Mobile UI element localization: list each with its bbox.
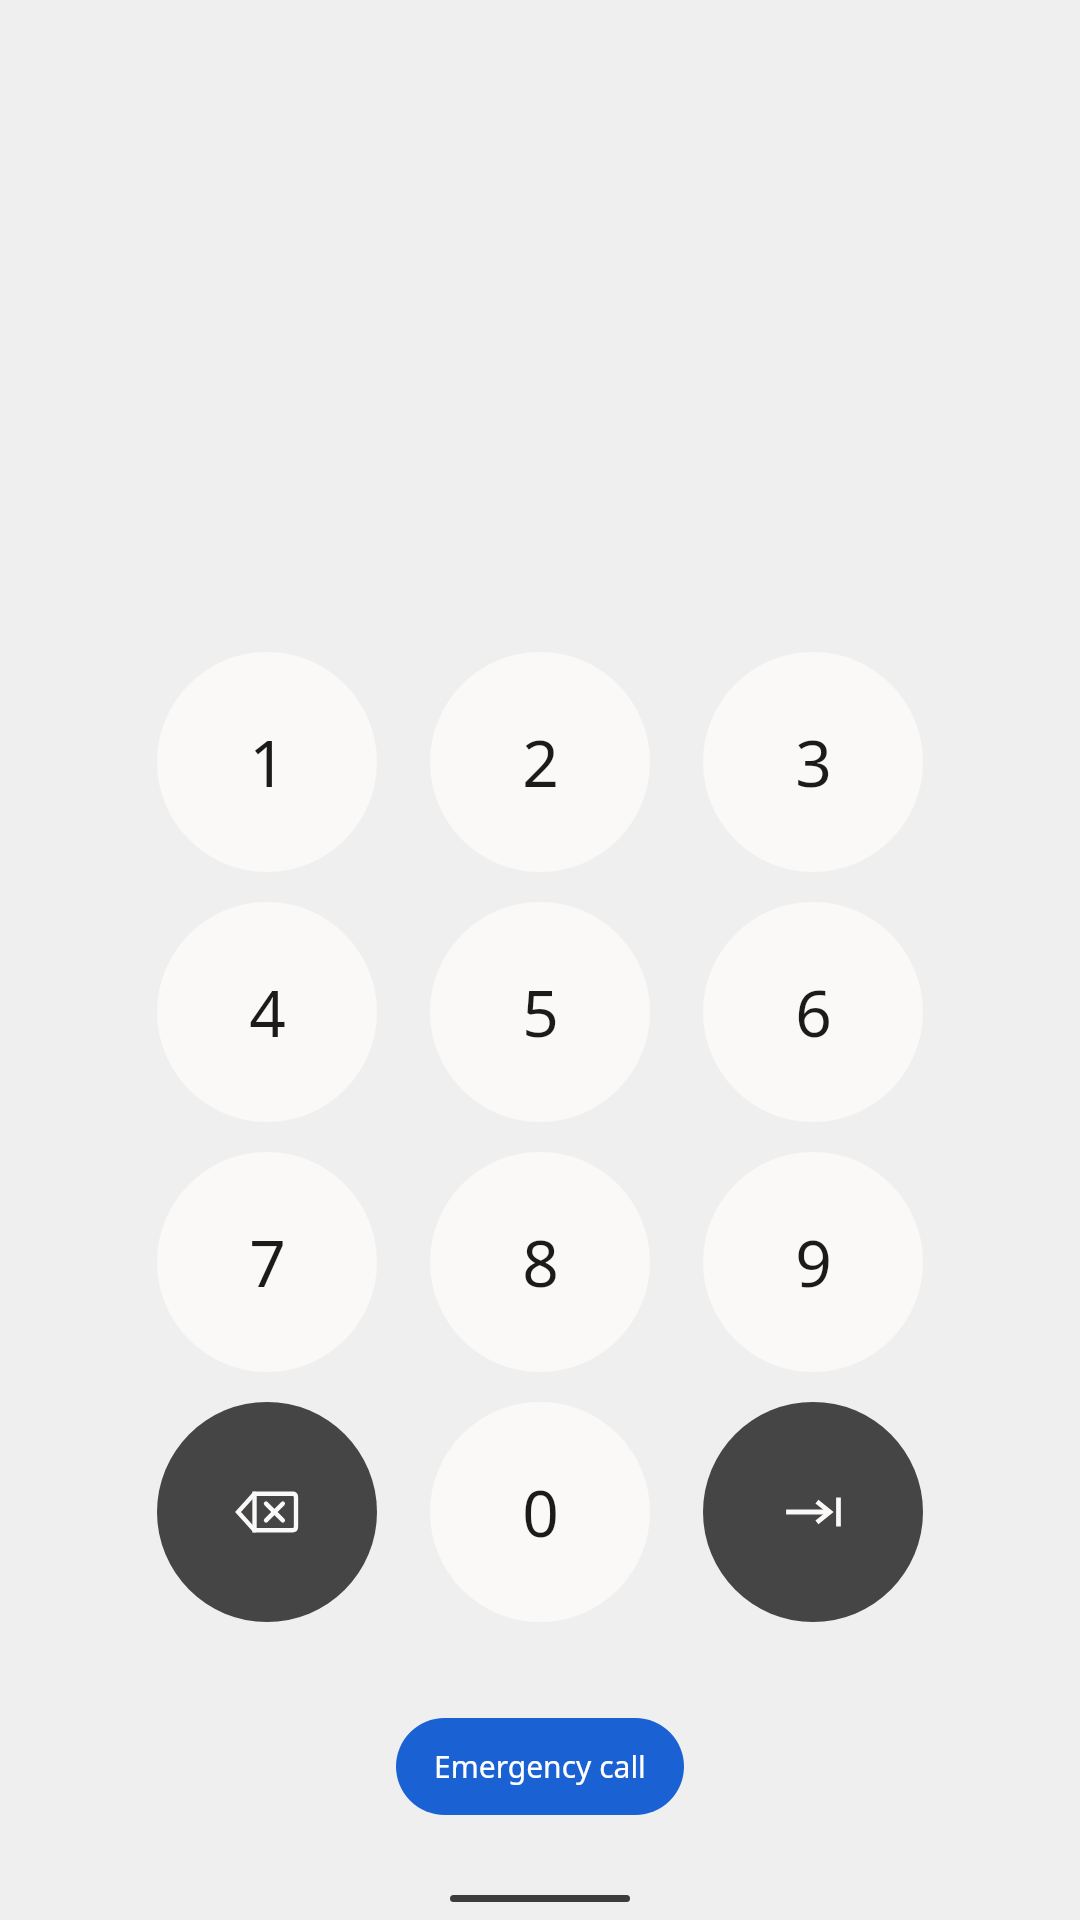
button[interactable]: 1 xyxy=(157,652,377,872)
staticText: Emergency call xyxy=(434,1746,646,1787)
button[interactable]: 6 xyxy=(703,902,923,1122)
staticText: 3 xyxy=(795,719,832,806)
staticText: 1 xyxy=(249,719,286,806)
button[interactable]: Backspace xyxy=(157,1402,377,1622)
staticText: 8 xyxy=(522,1219,559,1306)
staticText: 4 xyxy=(249,969,286,1056)
staticText: 2 xyxy=(522,719,559,806)
button[interactable]: 0 xyxy=(430,1402,650,1622)
button[interactable]: 2 xyxy=(430,652,650,872)
button[interactable]: 4 xyxy=(157,902,377,1122)
staticText: 7 xyxy=(249,1219,286,1306)
button[interactable]: Enter xyxy=(703,1402,923,1622)
button[interactable]: 8 xyxy=(430,1152,650,1372)
staticText: 6 xyxy=(795,969,832,1056)
staticText: 9 xyxy=(795,1219,832,1306)
button[interactable]: 3 xyxy=(703,652,923,872)
button[interactable]: 7 xyxy=(157,1152,377,1372)
staticText: 5 xyxy=(522,969,559,1056)
staticText: 0 xyxy=(522,1469,559,1556)
button[interactable]: Emergency call xyxy=(396,1718,684,1815)
button[interactable]: 5 xyxy=(430,902,650,1122)
button[interactable]: 9 xyxy=(703,1152,923,1372)
